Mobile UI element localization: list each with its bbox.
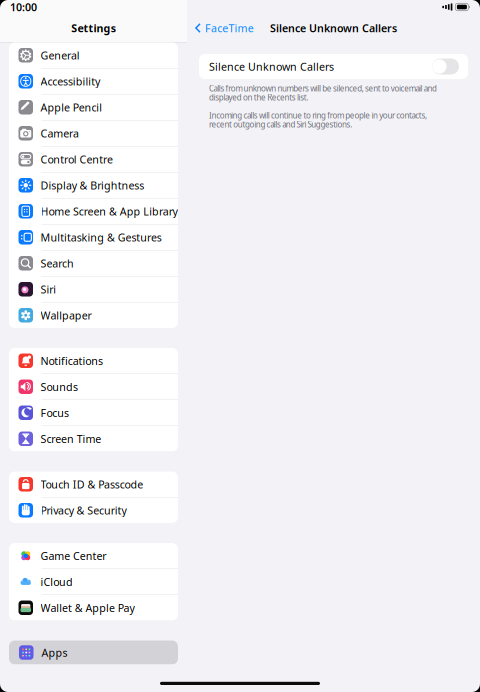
button[interactable]: Multitasking & Gestures — [9, 224, 178, 250]
staticText: Game Center — [40, 549, 106, 563]
button[interactable]: Notifications — [9, 348, 178, 373]
button[interactable]: FaceTime — [195, 21, 254, 35]
button[interactable]: Sounds — [9, 374, 178, 399]
staticText: Wallpaper — [40, 308, 91, 322]
staticText: Control Centre — [40, 152, 113, 166]
button[interactable]: Home Screen & App Library — [9, 198, 178, 224]
staticText: Calls from unknown numbers will be silen… — [209, 83, 437, 94]
staticText: displayed on the Recents list. — [209, 92, 308, 103]
staticText: Touch ID & Passcode — [40, 477, 143, 491]
staticText: Camera — [40, 126, 79, 140]
button[interactable]: Camera — [9, 120, 178, 146]
staticText: Apps — [41, 645, 67, 660]
staticText: Notifications — [40, 354, 103, 368]
staticText: iCloud — [40, 575, 73, 589]
button[interactable]: Screen Time — [9, 426, 178, 451]
staticText: Focus — [40, 406, 69, 420]
button[interactable]: Focus — [9, 400, 178, 425]
staticText: Privacy & Security — [40, 503, 126, 517]
staticText: Silence Unknown Callers — [209, 59, 334, 74]
staticText: Display & Brightness — [40, 178, 144, 192]
staticText: recent outgoing calls and Siri Suggestio… — [209, 119, 352, 130]
button[interactable]: Touch ID & Passcode — [9, 471, 178, 497]
button[interactable]: Privacy & Security — [9, 497, 178, 523]
staticText: Home Screen & App Library — [40, 204, 178, 218]
staticText: Accessibility — [40, 74, 100, 88]
staticText: Settings — [71, 21, 116, 35]
staticText: Apple Pencil — [40, 100, 102, 114]
button[interactable]: iCloud — [9, 569, 178, 594]
button[interactable]: Siri — [9, 276, 178, 302]
button[interactable]: Silence Unknown Callers — [199, 54, 468, 79]
button[interactable]: Wallet & Apple Pay — [9, 595, 178, 620]
staticText: Search — [40, 256, 74, 270]
staticText: Silence Unknown Callers — [270, 21, 397, 35]
button[interactable]: Accessibility — [9, 68, 178, 94]
button[interactable]: Control Centre — [9, 146, 178, 172]
staticText: Incoming calls will continue to ring fro… — [209, 110, 427, 121]
button[interactable]: General — [9, 42, 178, 68]
staticText: General — [40, 48, 80, 62]
button[interactable]: Search — [9, 250, 178, 276]
staticText: Sounds — [40, 380, 78, 394]
button[interactable]: Apps — [9, 640, 178, 664]
staticText: Wallet & Apple Pay — [40, 601, 134, 615]
staticText: 10:00 — [10, 0, 37, 14]
button[interactable]: Apple Pencil — [9, 94, 178, 120]
button[interactable]: Wallpaper — [9, 302, 178, 328]
button[interactable]: Game Center — [9, 543, 178, 568]
button[interactable]: Display & Brightness — [9, 172, 178, 198]
staticText: Screen Time — [40, 432, 101, 446]
staticText: FaceTime — [205, 21, 254, 35]
staticText: Multitasking & Gestures — [40, 230, 162, 244]
staticText: Siri — [40, 282, 56, 296]
